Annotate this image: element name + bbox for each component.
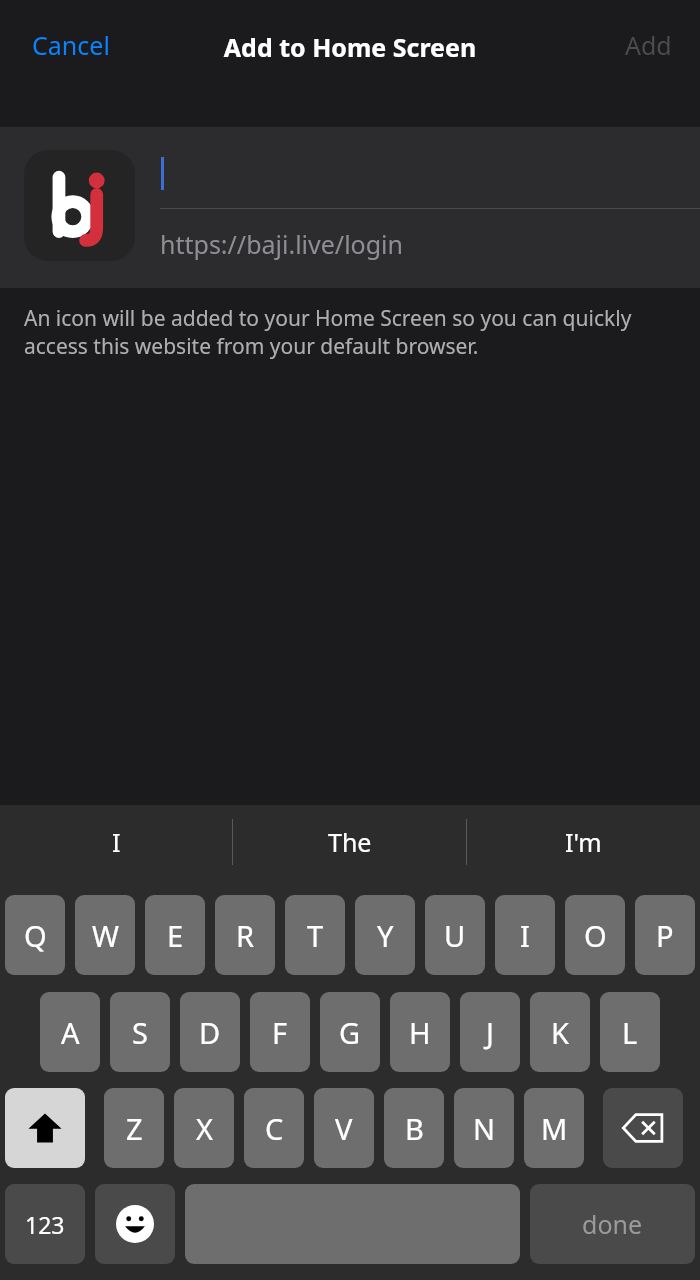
staticText: N [473,1109,496,1148]
button[interactable]: P [635,895,695,975]
staticText: G [339,1013,361,1052]
staticText: I [112,825,121,859]
button[interactable]: J [460,992,520,1072]
button[interactable]: Y [355,895,415,975]
staticText: X [196,1109,213,1148]
staticText: F [272,1013,288,1052]
button[interactable]: U [425,895,485,975]
button[interactable]: C [244,1088,304,1168]
button[interactable]: F [250,992,310,1072]
staticText: D [199,1013,221,1052]
button[interactable]: Backspace [603,1088,683,1168]
staticText: Add to Home Screen [0,30,700,64]
staticText: Q [24,916,47,955]
button[interactable]: H [390,992,450,1072]
button[interactable]: R [215,895,275,975]
button[interactable] [160,135,700,207]
staticText: O [584,916,607,955]
staticText: done [582,1207,643,1241]
staticText: 123 [25,1209,65,1240]
button[interactable]: O [565,895,625,975]
staticText: V [335,1109,353,1148]
button[interactable]: W [75,895,135,975]
button[interactable]: Shift [5,1088,85,1168]
button[interactable]: A [40,992,100,1072]
button[interactable]: https://baji.live/login [160,211,700,277]
button[interactable]: T [285,895,345,975]
button[interactable]: G [320,992,380,1072]
button[interactable]: Cancel [16,22,126,68]
staticText: A [61,1013,80,1052]
staticText: L [622,1013,638,1052]
staticText: S [132,1013,148,1052]
button[interactable]: Q [5,895,65,975]
staticText: U [444,916,466,955]
staticText: M [541,1109,568,1148]
staticText: Add [625,28,672,62]
staticText: R [236,916,255,955]
button[interactable]: Z [104,1088,164,1168]
staticText: B [405,1109,424,1148]
button[interactable]: E [145,895,205,975]
button[interactable]: D [180,992,240,1072]
staticText: An icon will be added to your Home Scree… [24,304,676,360]
button[interactable]: N [454,1088,514,1168]
staticText: T [307,916,324,955]
staticText: Cancel [32,28,110,62]
button[interactable]: Space [185,1184,520,1264]
button[interactable]: X [174,1088,234,1168]
button[interactable]: 123 [5,1184,85,1264]
staticText: I [520,916,530,955]
button[interactable]: M [524,1088,584,1168]
button[interactable]: The [233,805,466,878]
button[interactable]: V [314,1088,374,1168]
staticText: C [265,1109,284,1148]
button[interactable]: S [110,992,170,1072]
staticText: W [92,916,119,955]
button[interactable]: I [495,895,555,975]
button[interactable]: Emoji [95,1184,175,1264]
staticText: E [167,916,184,955]
button[interactable]: done [530,1184,695,1264]
staticText: J [486,1013,494,1052]
staticText: The [328,825,372,859]
button[interactable]: L [600,992,660,1072]
staticText: https://baji.live/login [160,227,404,261]
staticText: Z [126,1109,143,1148]
button[interactable]: I'm [467,805,700,878]
button[interactable]: B [384,1088,444,1168]
button[interactable]: I [0,805,232,878]
staticText: K [551,1013,569,1052]
staticText: H [409,1013,431,1052]
staticText: P [656,916,674,955]
button[interactable]: K [530,992,590,1072]
button[interactable]: Add [613,22,684,68]
staticText: Y [377,916,394,955]
staticText: I'm [565,825,602,859]
